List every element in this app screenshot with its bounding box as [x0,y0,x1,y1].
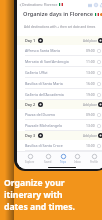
button[interactable]: Trips [60,154,66,164]
staticText: Piazza del Duomo [25,112,56,117]
button[interactable]: Galleria dell'Accademia [17,89,102,100]
button[interactable]: Map [93,2,99,8]
staticText: Add destinations with + then set date an… [24,25,96,29]
staticText: Saved [44,160,52,164]
staticText: Profile [90,160,98,164]
staticText: 10:00 [86,143,95,148]
staticText: Inbox [74,160,81,164]
staticText: Mercato di Sant'Ambrogio [25,59,69,64]
button[interactable]: Saved [44,154,52,164]
staticText: dates and times. [4,201,75,213]
staticText: Basilica di Santa Maria [25,81,63,86]
button[interactable]: Destinations: Florence [19,2,63,7]
staticText: itinerary with [4,189,63,201]
button[interactable]: Day 1 [17,36,102,45]
button[interactable]: Day 3 [17,131,102,140]
staticText: 16:00 [86,81,95,86]
staticText: Basilica di Santa Croce [25,143,63,148]
button[interactable]: List view [87,2,93,8]
button[interactable]: Basilica di Santa Croce [17,140,102,151]
staticText: Affresco Santa Maria [25,48,60,53]
button[interactable]: Affresco Santa Maria [17,45,102,56]
staticText: Add place [83,39,97,43]
button[interactable]: Inbox [74,154,81,164]
staticText: Galleria Uffizi [25,70,48,75]
staticText: Galleria dell'Accademia [25,92,64,97]
staticText: Day 3 [25,133,36,138]
button[interactable]: Galleria Uffizi [17,67,102,78]
button[interactable]: Piazzale Michelangelo [17,120,102,131]
staticText: Destinations: Florence [22,2,58,7]
staticText: 09:00 [86,112,95,117]
button[interactable]: Basilica di Santa Maria [17,78,102,89]
staticText: Add place [83,134,97,138]
staticText: Organize your [4,177,65,189]
staticText: Organize days in Florence [23,10,94,18]
staticText: 13:00 [86,70,95,75]
button[interactable]: Profile [90,154,98,164]
staticText: 13:00 [86,123,95,128]
button[interactable]: Day 2 [17,100,102,109]
staticText: 09:00 [86,48,95,53]
button[interactable]: Piazza del Duomo [17,109,102,120]
staticText: Day 2 [25,102,36,107]
button[interactable]: Share [99,2,102,8]
staticText: Day 1 [25,38,36,43]
button[interactable]: Mercato di Sant'Ambrogio [17,56,102,67]
button[interactable]: Explore [25,154,35,164]
staticText: Trips [60,160,66,164]
staticText: 11:00 [86,59,95,64]
staticText: Explore [25,160,35,164]
staticText: 19:00 [86,92,95,97]
staticText: Add place [83,103,97,107]
staticText: Piazzale Michelangelo [25,123,63,128]
